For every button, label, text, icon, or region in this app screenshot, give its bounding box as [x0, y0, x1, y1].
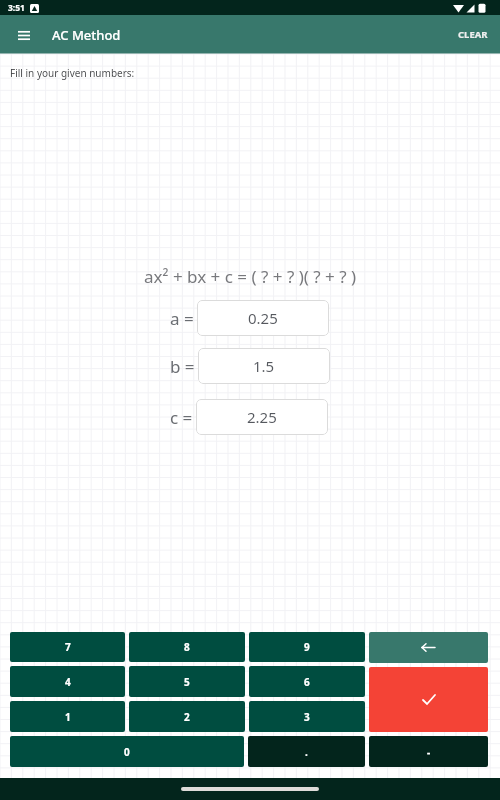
- button[interactable]: 8: [129, 632, 245, 662]
- staticText: c =: [170, 406, 193, 429]
- staticText: a =: [170, 307, 194, 330]
- button[interactable]: 2.25: [196, 399, 328, 435]
- staticText: 0: [124, 745, 130, 759]
- staticText: AC Method: [52, 26, 121, 44]
- button[interactable]: [369, 667, 488, 732]
- staticText: 0.25: [248, 308, 278, 328]
- staticText: 9: [304, 640, 310, 654]
- button[interactable]: 4: [10, 666, 125, 697]
- button[interactable]: 1: [10, 701, 125, 732]
- staticText: 2.25: [247, 407, 277, 427]
- staticText: 1.5: [253, 356, 275, 376]
- staticText: CLEAR: [458, 28, 488, 41]
- staticText: 2: [184, 710, 190, 724]
- button[interactable]: 1.5: [198, 348, 330, 384]
- staticText: ax² + bx + c = ( ? + ? )( ? + ? ): [144, 265, 357, 288]
- staticText: 1: [65, 710, 71, 724]
- button[interactable]: [369, 632, 488, 663]
- staticText: 3: [304, 710, 310, 724]
- button[interactable]: -: [369, 736, 488, 767]
- staticText: -: [427, 745, 431, 759]
- button[interactable]: .: [248, 736, 365, 767]
- button[interactable]: CLEAR: [458, 28, 488, 41]
- button[interactable]: 2: [129, 701, 245, 732]
- staticText: 3:51: [8, 2, 25, 14]
- button[interactable]: 6: [249, 666, 365, 697]
- staticText: 8: [184, 640, 190, 654]
- button[interactable]: [14, 25, 34, 45]
- button[interactable]: 5: [129, 666, 245, 697]
- button[interactable]: 9: [249, 632, 365, 662]
- staticText: .: [305, 745, 308, 759]
- staticText: 7: [65, 640, 71, 654]
- button[interactable]: 0: [10, 736, 244, 767]
- staticText: Fill in your given numbers:: [10, 66, 135, 80]
- button[interactable]: 0.25: [197, 300, 329, 336]
- staticText: 4: [65, 675, 71, 689]
- staticText: b =: [170, 355, 195, 378]
- button[interactable]: 7: [10, 632, 125, 662]
- button[interactable]: 3: [249, 701, 365, 732]
- staticText: 6: [304, 675, 310, 689]
- staticText: 5: [184, 675, 190, 689]
